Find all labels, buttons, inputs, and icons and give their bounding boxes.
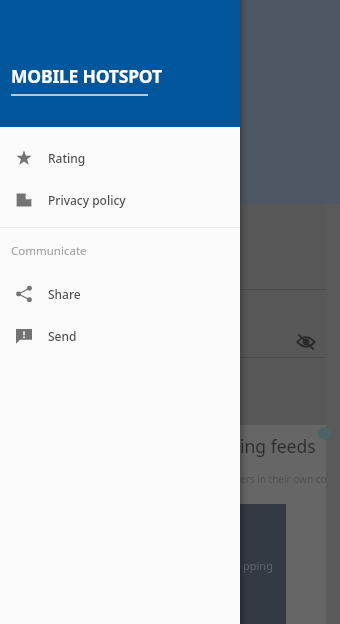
other: Rating <box>16 150 32 166</box>
other: Privacy policy <box>16 192 32 208</box>
staticText: Share <box>48 286 81 302</box>
staticText: Communicate <box>11 243 87 259</box>
staticText: ers in their own co <box>240 472 327 486</box>
other: Hide password <box>296 332 316 352</box>
button[interactable]: Send <box>0 315 240 357</box>
button[interactable]: Rating <box>0 137 240 179</box>
other: Send <box>16 328 32 344</box>
staticText: pping <box>243 558 273 573</box>
staticText: Rating <box>48 150 86 166</box>
button[interactable]: Share <box>0 273 240 315</box>
other: Share <box>16 286 32 302</box>
button[interactable]: Privacy policy <box>0 179 240 221</box>
staticText: Privacy policy <box>48 192 126 208</box>
staticText: MOBILE HOTSPOT <box>11 64 162 88</box>
staticText: Send <box>48 328 77 344</box>
staticText: ing feeds <box>240 434 316 458</box>
